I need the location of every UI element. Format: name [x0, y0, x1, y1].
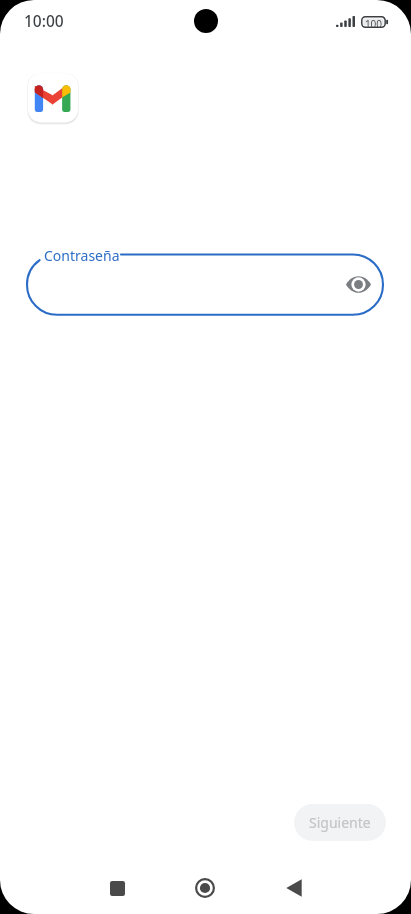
staticText: 100: [365, 17, 382, 29]
button[interactable]: Inicio: [183, 866, 227, 910]
button[interactable]: Mostrar contraseña: [338, 264, 379, 305]
staticText: 10:00: [24, 10, 64, 31]
staticText: Siguiente: [309, 813, 371, 832]
button[interactable]: Recientes: [95, 866, 139, 910]
button[interactable]: [27, 72, 79, 124]
staticText: Contraseña: [44, 246, 120, 265]
button[interactable]: Contraseña: [27, 254, 383, 315]
button[interactable]: Atrás: [272, 866, 316, 910]
button[interactable]: Siguiente: [294, 804, 386, 841]
